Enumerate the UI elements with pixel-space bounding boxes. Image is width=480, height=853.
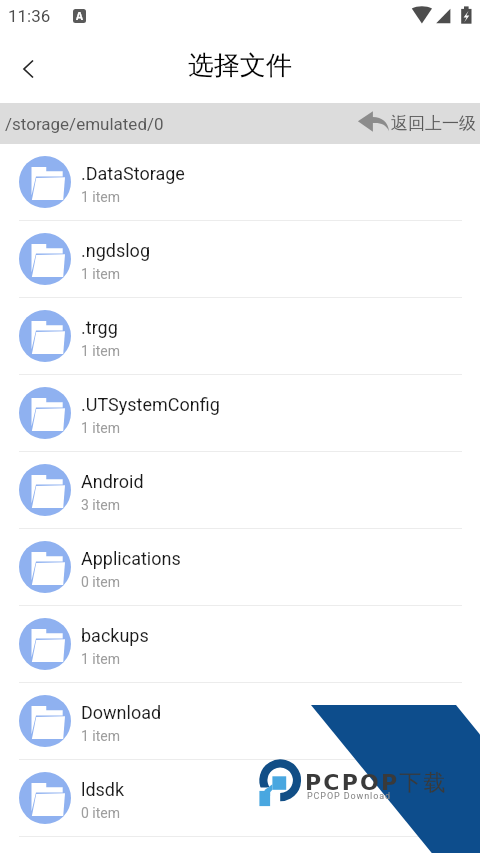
- staticText: .UTSystemConfig: [81, 394, 220, 415]
- staticText: 3 item: [81, 497, 121, 513]
- staticText: 选择文件: [188, 49, 292, 82]
- button[interactable]: .DataStorage: [0, 144, 480, 221]
- staticText: .DataStorage: [81, 163, 185, 184]
- staticText: .ngdslog: [81, 240, 150, 261]
- staticText: 1 item: [81, 343, 121, 359]
- button[interactable]: Android: [0, 452, 480, 529]
- staticText: 0 item: [81, 574, 121, 590]
- staticText: 1 item: [81, 420, 121, 436]
- staticText: 1 item: [81, 728, 121, 744]
- staticText: Applications: [81, 548, 181, 569]
- staticText: .trgg: [81, 317, 118, 338]
- staticText: backups: [81, 625, 149, 646]
- staticText: A: [76, 9, 83, 23]
- staticText: PCPOP Download: [307, 791, 391, 802]
- button[interactable]: Applications: [0, 529, 480, 606]
- staticText: ldsdk: [81, 779, 125, 800]
- staticText: 0 item: [81, 805, 121, 821]
- staticText: PCPOP下载: [305, 769, 448, 797]
- staticText: 1 item: [81, 189, 121, 205]
- button[interactable]: ldsdk: [0, 760, 480, 837]
- staticText: 1 item: [81, 651, 121, 667]
- staticText: 1 item: [81, 266, 121, 282]
- button[interactable]: .UTSystemConfig: [0, 375, 480, 452]
- staticText: 11:36: [8, 6, 51, 26]
- button[interactable]: .trgg: [0, 298, 480, 375]
- staticText: Android: [81, 471, 144, 492]
- button[interactable]: Back: [10, 50, 48, 88]
- staticText: Download: [81, 702, 162, 723]
- button[interactable]: Download: [0, 683, 480, 760]
- button[interactable]: .ngdslog: [0, 221, 480, 298]
- staticText: /storage/emulated/0: [5, 114, 164, 134]
- staticText: 返回上一级: [391, 113, 476, 134]
- button[interactable]: backups: [0, 606, 480, 683]
- button[interactable]: 返回上一级: [355, 108, 480, 140]
